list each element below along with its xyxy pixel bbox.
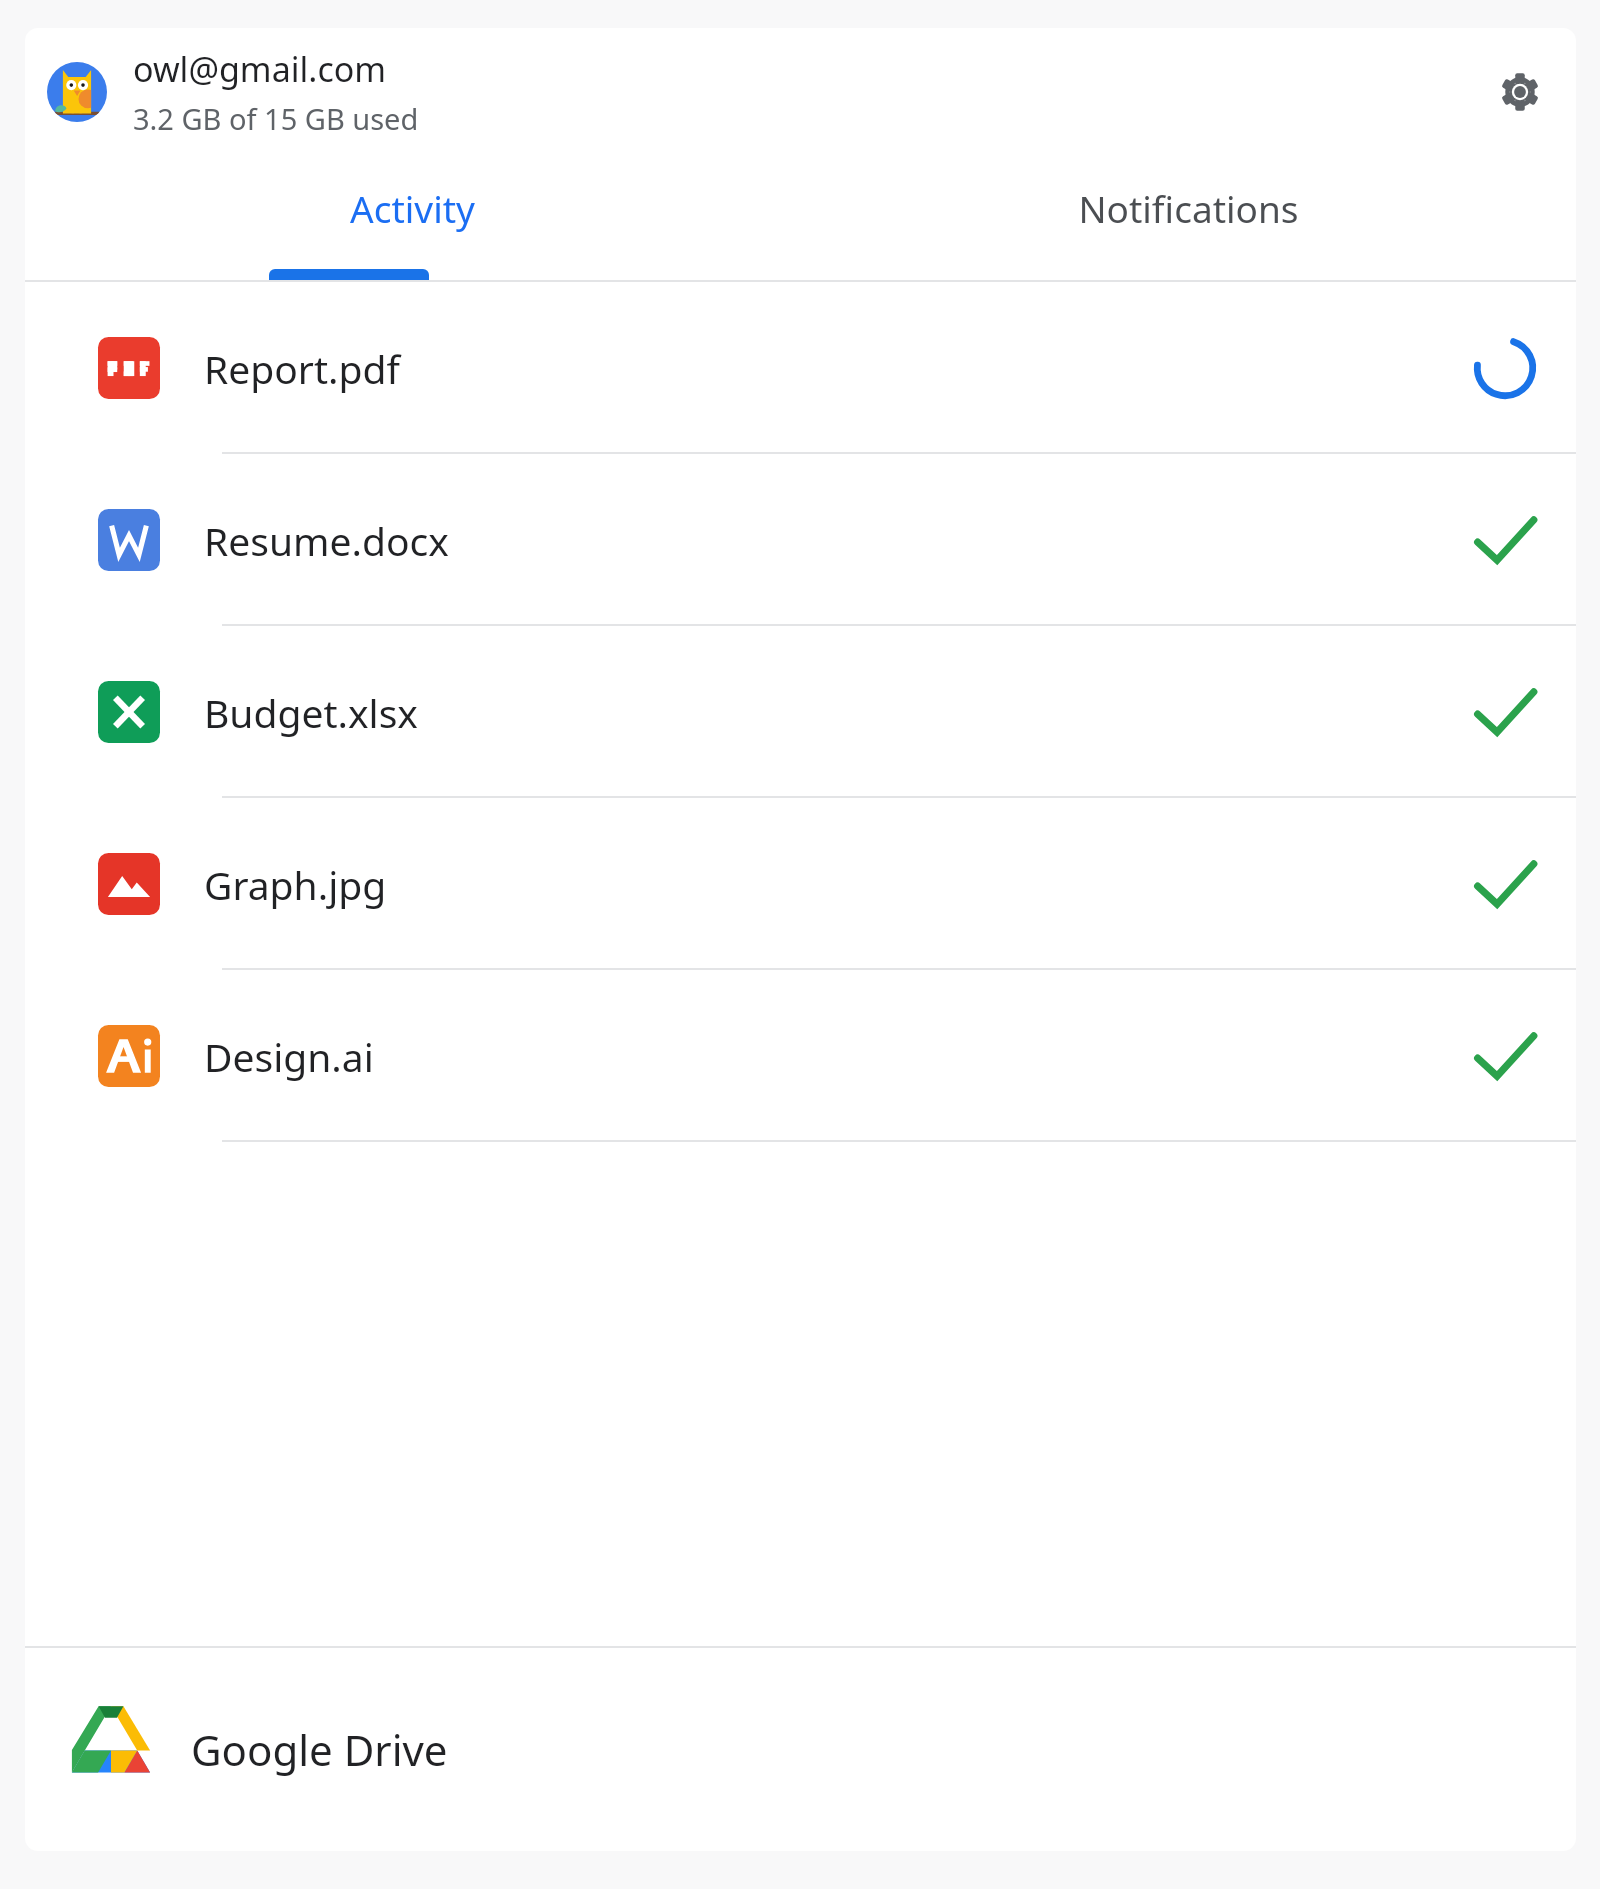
staticText: 3.2 GB of 15 GB used (133, 99, 419, 138)
staticText: Google Drive (191, 1721, 448, 1778)
staticText: Activity (350, 183, 475, 233)
button[interactable]: Report.pdf (25, 282, 1576, 454)
button[interactable]: Settings (1489, 61, 1551, 123)
staticText: Report.pdf (204, 342, 1469, 395)
staticText: Resume.docx (204, 514, 1469, 567)
staticText: owl@gmail.com (133, 46, 387, 92)
staticText: Design.ai (204, 1030, 1469, 1083)
staticText: Budget.xlsx (204, 686, 1469, 739)
staticText: Notifications (1078, 183, 1299, 233)
button[interactable]: Activity (25, 156, 800, 280)
button[interactable]: Google Drive (25, 1648, 1576, 1851)
button[interactable]: Design.ai (25, 970, 1576, 1142)
button[interactable]: Graph.jpg (25, 798, 1576, 970)
button[interactable]: Notifications (800, 156, 1576, 280)
button[interactable]: Resume.docx (25, 454, 1576, 626)
button[interactable]: Budget.xlsx (25, 626, 1576, 798)
button[interactable]: Account (47, 62, 107, 122)
staticText: Graph.jpg (204, 858, 1469, 911)
